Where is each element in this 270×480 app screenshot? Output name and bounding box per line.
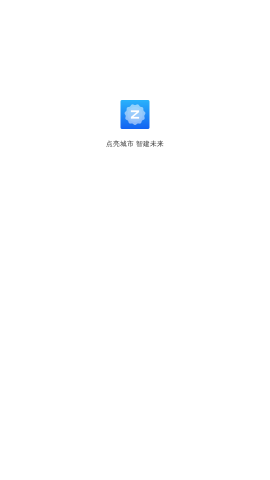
- staticText: 点亮城市 智建未来: [106, 140, 164, 148]
